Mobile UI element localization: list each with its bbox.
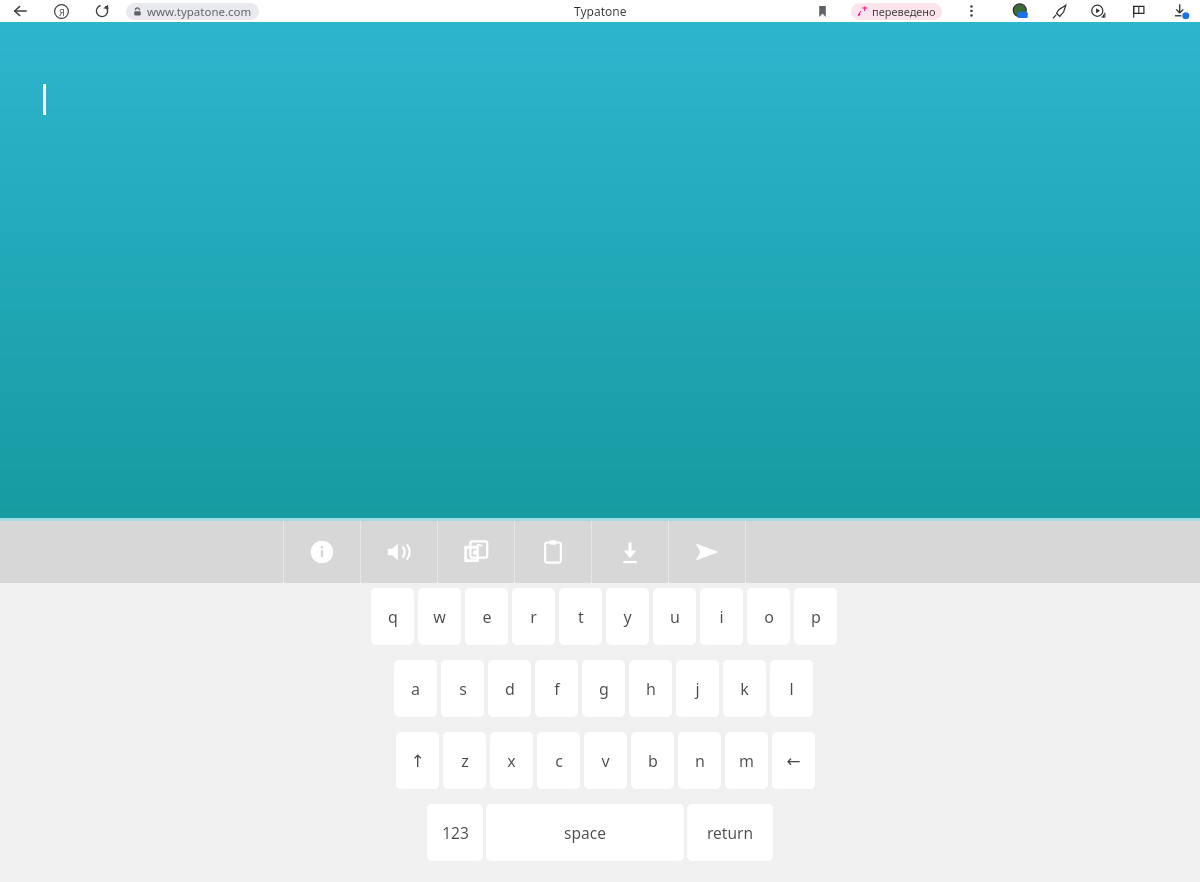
staticText: x [507, 750, 516, 772]
button[interactable]: s [441, 660, 484, 717]
button[interactable]: Back [8, 0, 32, 22]
button[interactable]: u [653, 588, 696, 645]
staticText: t [578, 606, 584, 628]
button[interactable]: t [559, 588, 602, 645]
button[interactable]: c [537, 732, 580, 789]
button[interactable]: переведено [851, 3, 942, 20]
staticText: f [554, 678, 560, 700]
staticText: r [530, 606, 537, 628]
button[interactable]: Tag extension [1126, 0, 1150, 22]
staticText: ↑ [410, 751, 425, 771]
button[interactable]: k [723, 660, 766, 717]
staticText: k [740, 678, 749, 700]
staticText: s [459, 678, 467, 700]
staticText: 123 [442, 822, 469, 843]
staticText: a [411, 678, 420, 700]
staticText: return [707, 822, 753, 843]
staticText: h [646, 678, 656, 700]
button[interactable]: 123 [427, 804, 483, 861]
button[interactable]: z [443, 732, 486, 789]
staticText: www.typatone.com [147, 4, 252, 20]
button[interactable]: x [490, 732, 533, 789]
staticText: Typatone [574, 3, 627, 19]
button[interactable]: g [582, 660, 625, 717]
staticText: y [623, 606, 632, 628]
staticText: l [789, 678, 794, 700]
button[interactable]: Info [284, 521, 360, 583]
staticText: q [388, 606, 398, 628]
staticText: d [505, 678, 515, 700]
button[interactable]: Rocket extension [1047, 0, 1071, 22]
button[interactable]: f [535, 660, 578, 717]
button[interactable]: Downloads [1168, 0, 1194, 22]
staticText: ← [786, 751, 801, 771]
staticText: i [719, 606, 724, 628]
button[interactable]: Sound [361, 521, 437, 583]
button[interactable]: r [512, 588, 555, 645]
button[interactable]: q [371, 588, 414, 645]
button[interactable]: b [631, 732, 674, 789]
button[interactable]: y [606, 588, 649, 645]
button[interactable]: return [687, 804, 773, 861]
staticText: Я [59, 6, 65, 18]
button[interactable]: h [629, 660, 672, 717]
staticText: j [695, 678, 700, 700]
button[interactable]: space [486, 804, 684, 861]
button[interactable]: Reload [90, 0, 114, 22]
button[interactable]: j [676, 660, 719, 717]
button[interactable]: p [794, 588, 837, 645]
button[interactable]: Clipboard [515, 521, 591, 583]
button[interactable]: Media player extension [1086, 0, 1110, 22]
button[interactable]: ↑ [396, 732, 439, 789]
staticText: v [601, 750, 610, 772]
button[interactable]: Send [669, 521, 745, 583]
staticText: z [461, 750, 469, 772]
button[interactable]: m [725, 732, 768, 789]
staticText: u [670, 606, 680, 628]
button[interactable]: Bookmark [810, 0, 834, 22]
button[interactable]: ← [772, 732, 815, 789]
button[interactable]: d [488, 660, 531, 717]
button[interactable]: Music [438, 521, 514, 583]
staticText: p [811, 606, 821, 628]
button[interactable]: l [770, 660, 813, 717]
button[interactable]: Translate extension [1008, 0, 1032, 22]
button[interactable]: Download [592, 521, 668, 583]
staticText: e [482, 606, 492, 628]
button[interactable]: o [747, 588, 790, 645]
staticText: переведено [872, 4, 936, 19]
staticText: g [599, 678, 609, 700]
button[interactable]: w [418, 588, 461, 645]
button[interactable]: e [465, 588, 508, 645]
staticText: o [764, 606, 774, 628]
button[interactable]: a [394, 660, 437, 717]
button[interactable]: i [700, 588, 743, 645]
staticText: b [648, 750, 658, 772]
button[interactable]: More options [960, 0, 982, 22]
button[interactable]: n [678, 732, 721, 789]
staticText: c [555, 750, 563, 772]
staticText: m [739, 750, 754, 772]
staticText: w [433, 606, 446, 628]
button[interactable]: Yandex [49, 0, 73, 22]
button[interactable]: v [584, 732, 627, 789]
button[interactable]: www.typatone.com [126, 3, 259, 20]
staticText: space [564, 822, 606, 843]
staticText: n [695, 750, 705, 772]
